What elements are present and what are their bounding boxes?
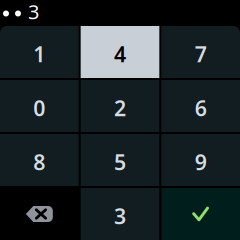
button[interactable]: Confirm (161, 188, 240, 240)
staticText: 7 (195, 40, 207, 68)
button[interactable]: 3 (81, 188, 159, 240)
staticText: 3 (28, 0, 39, 25)
staticText: 8 (33, 148, 45, 176)
staticText: 6 (195, 94, 207, 122)
button[interactable]: 0 (0, 80, 79, 132)
button[interactable]: 7 (161, 26, 240, 78)
button[interactable]: 4 (81, 26, 159, 78)
staticText: 3 (114, 202, 126, 230)
button[interactable]: 2 (81, 80, 159, 132)
button[interactable]: 1 (0, 26, 79, 78)
button[interactable]: 9 (161, 134, 240, 186)
staticText: 9 (195, 148, 207, 176)
button[interactable]: 8 (0, 134, 79, 186)
staticText: 4 (114, 40, 126, 68)
staticText: 1 (33, 40, 45, 68)
staticText: 5 (114, 148, 126, 176)
staticText: 0 (33, 94, 45, 122)
button[interactable]: 6 (161, 80, 240, 132)
button[interactable]: Delete (0, 188, 79, 240)
staticText: 2 (114, 94, 126, 122)
button[interactable]: 5 (81, 134, 159, 186)
